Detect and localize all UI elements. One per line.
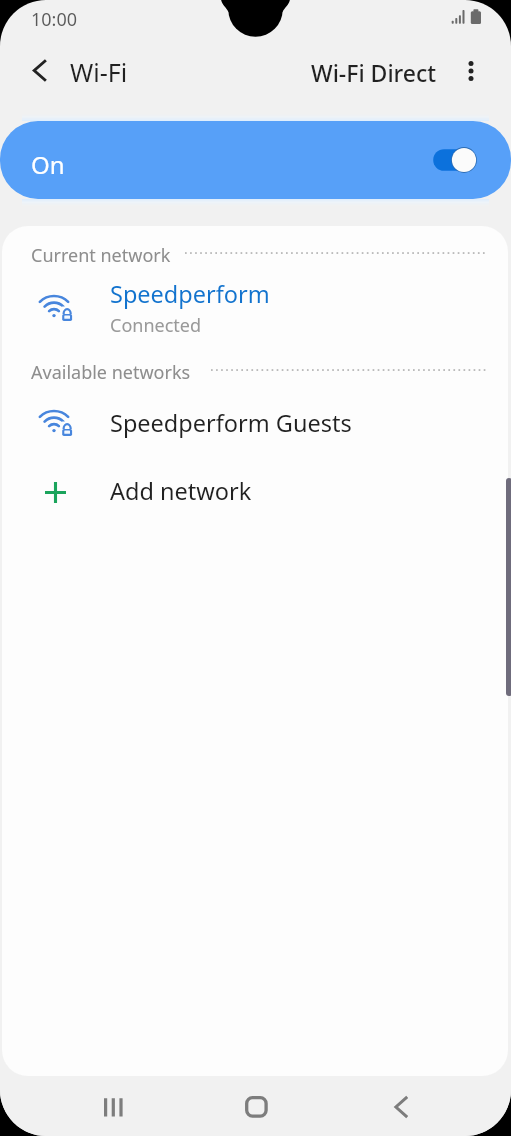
button[interactable]: More options [453, 53, 489, 89]
button[interactable]: Back [372, 1085, 430, 1129]
button[interactable]: Navigate up [22, 53, 56, 87]
staticText: Wi-Fi [70, 55, 128, 89]
staticText: Connected [110, 313, 202, 338]
button[interactable]: Speedperform Guests [2, 393, 508, 453]
staticText: Current network [31, 243, 171, 268]
button[interactable]: Add network [2, 461, 508, 521]
staticText: Speedperform [110, 278, 270, 310]
staticText: Add network [110, 475, 252, 507]
staticText: 10:00 [31, 7, 78, 32]
button[interactable]: Home [227, 1084, 285, 1128]
button[interactable]: On [0, 121, 511, 199]
staticText: Wi-Fi Direct [311, 57, 437, 88]
staticText: On [31, 148, 65, 181]
staticText: Speedperform Guests [110, 407, 352, 439]
button[interactable]: Speedperform [2, 273, 508, 341]
button[interactable]: Wi-Fi Direct [309, 53, 439, 92]
button[interactable]: Recents [86, 1086, 144, 1130]
staticText: Available networks [31, 360, 191, 385]
